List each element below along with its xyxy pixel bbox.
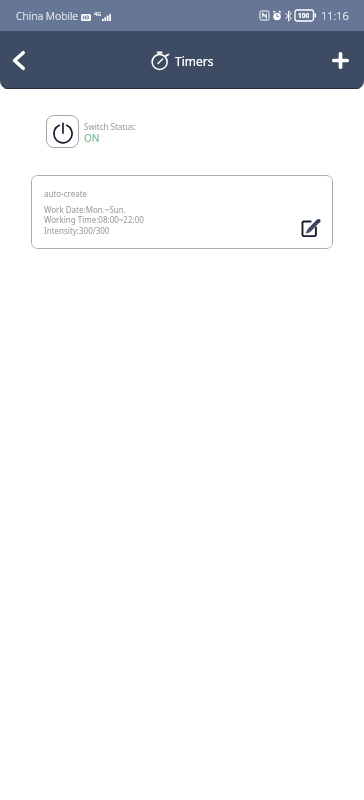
button[interactable]: Edit	[298, 213, 324, 239]
staticText: China Mobile	[16, 9, 79, 23]
button[interactable]: Power switch	[46, 115, 79, 148]
button[interactable]: Add	[316, 36, 364, 84]
staticText: auto-create	[44, 188, 88, 199]
staticText: 11:16	[321, 8, 349, 23]
staticText: Switch Status:	[84, 121, 137, 132]
staticText: 4G	[94, 10, 102, 17]
button[interactable]: Back	[0, 36, 36, 84]
staticText: ON	[84, 131, 100, 145]
staticText: 100	[298, 11, 310, 20]
staticText: Work Date:Mon.~Sun. Working Time:08:00~2…	[44, 204, 144, 237]
staticText: Timers	[175, 53, 214, 69]
button[interactable]: auto-create	[31, 175, 333, 249]
